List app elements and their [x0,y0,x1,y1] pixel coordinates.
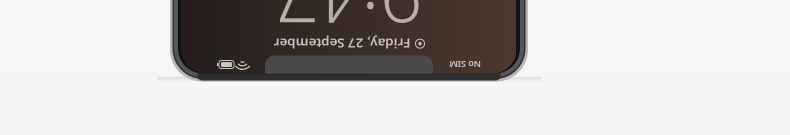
staticText: No SIM [309,64,341,77]
